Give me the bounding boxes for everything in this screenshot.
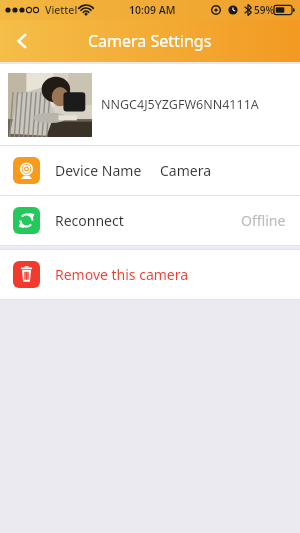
button[interactable]: Device name [0,146,300,195]
button[interactable]: Remove camera [0,250,300,299]
button[interactable]: NNGC4J5YZGFW6NN4111A [0,64,300,145]
staticText: NNGC4J5YZGFW6NN4111A [101,96,259,113]
staticText: Offline [241,211,286,230]
staticText: 10:09 AM [129,3,176,17]
staticText: Camera [160,161,212,180]
staticText: 59% [254,3,275,17]
staticText: Reconnect [55,211,124,230]
staticText: Remove this camera [55,265,189,284]
button[interactable]: Back [0,20,44,62]
button[interactable]: Reconnect [0,196,300,245]
staticText: Viettel [45,3,78,17]
staticText: Device Name [55,161,142,180]
staticText: Camera Settings [88,30,212,52]
